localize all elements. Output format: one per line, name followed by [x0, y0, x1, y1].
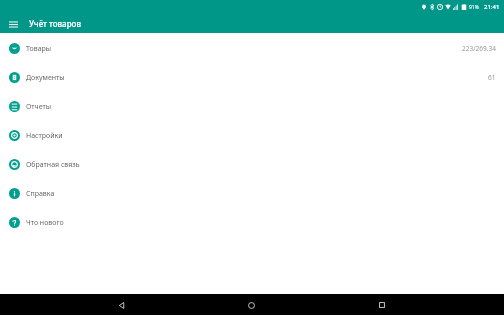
staticText: Обратная связь: [26, 160, 80, 170]
staticText: 91%: [469, 4, 479, 11]
staticText: 21:41: [484, 3, 500, 11]
button[interactable]: Home: [242, 296, 260, 314]
button[interactable]: Документы: [0, 63, 504, 92]
button[interactable]: Recent apps: [373, 296, 391, 314]
staticText: Учёт товаров: [29, 18, 81, 29]
staticText: Настройки: [26, 131, 63, 141]
staticText: Справка: [26, 189, 55, 199]
button[interactable]: Что нового: [0, 208, 504, 237]
staticText: Отчеты: [26, 102, 52, 112]
button[interactable]: Справка: [0, 179, 504, 208]
staticText: Что нового: [26, 218, 64, 228]
staticText: 61: [488, 73, 496, 82]
button[interactable]: Отчеты: [0, 92, 504, 121]
button[interactable]: Open navigation menu: [5, 16, 21, 32]
staticText: Документы: [26, 73, 65, 83]
button[interactable]: Back: [112, 296, 130, 314]
staticText: Товары: [26, 44, 52, 54]
button[interactable]: Обратная связь: [0, 150, 504, 179]
button[interactable]: Товары: [0, 34, 504, 63]
staticText: 223/269.34: [462, 44, 496, 53]
button[interactable]: Настройки: [0, 121, 504, 150]
